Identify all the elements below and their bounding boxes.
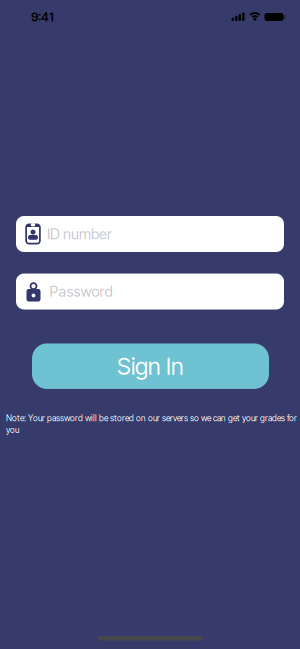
staticText: Note: Your password will be stored on ou… — [6, 413, 297, 423]
staticText: Sign In — [117, 352, 184, 380]
staticText: you — [6, 425, 19, 435]
staticText: 9:41 — [31, 10, 54, 24]
button[interactable]: Password — [16, 273, 284, 309]
button[interactable]: Sign In — [32, 343, 269, 389]
button[interactable]: ID number — [16, 216, 284, 252]
staticText: Password — [49, 283, 112, 300]
staticText: ID number — [47, 225, 112, 243]
